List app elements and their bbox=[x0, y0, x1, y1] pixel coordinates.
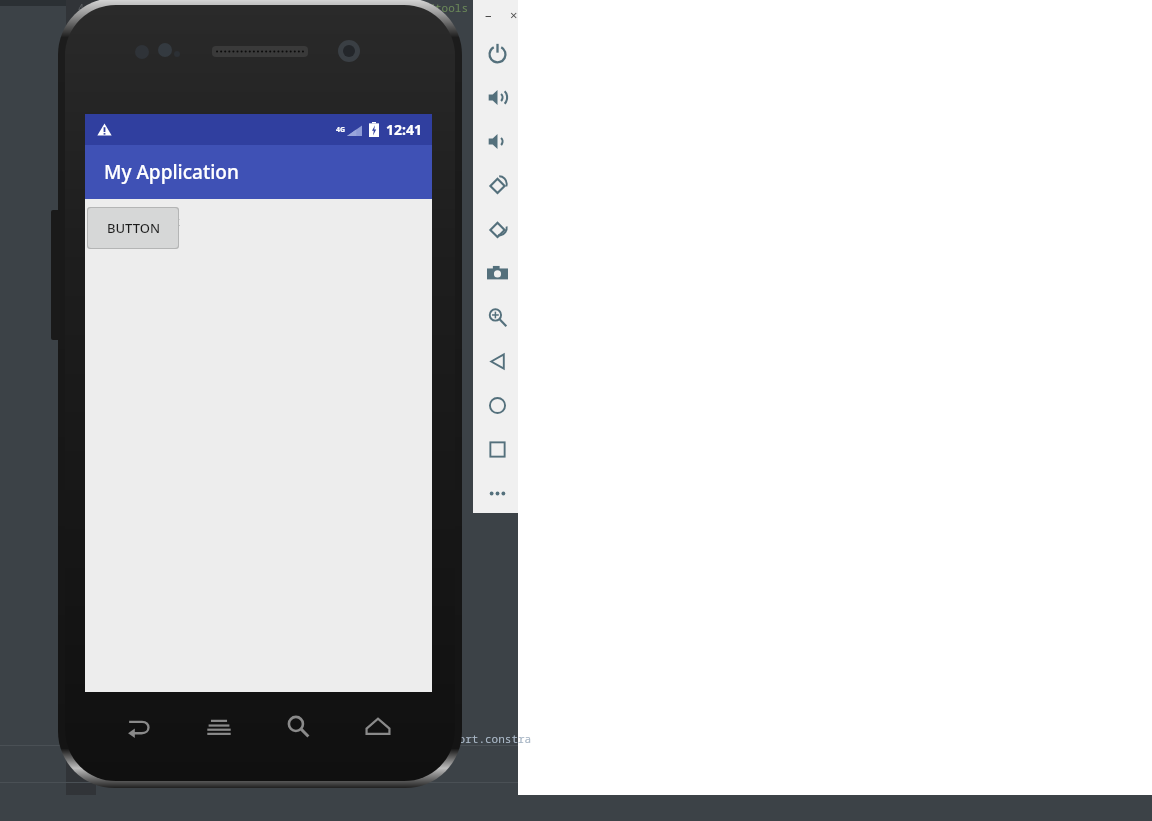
staticText: 4G bbox=[336, 125, 346, 135]
button[interactable]: BUTTON bbox=[88, 208, 178, 248]
button[interactable]: Zoom bbox=[478, 298, 516, 336]
staticText: port.constra bbox=[452, 731, 532, 746]
button[interactable]: Rotate right bbox=[478, 210, 516, 248]
button[interactable]: Home bbox=[352, 700, 404, 752]
button[interactable]: Power bbox=[478, 34, 516, 72]
staticText: My Application bbox=[104, 159, 239, 185]
button[interactable]: More bbox=[478, 474, 516, 512]
staticText: 12:41 bbox=[386, 120, 422, 139]
button[interactable]: Back bbox=[113, 700, 165, 752]
button[interactable]: Screenshot bbox=[478, 254, 516, 292]
button[interactable]: Home bbox=[478, 386, 516, 424]
staticText: droid.com/tools bbox=[369, 0, 468, 15]
button[interactable]: Back bbox=[478, 342, 516, 380]
button[interactable]: Volume up bbox=[478, 78, 516, 116]
staticText: 5 bbox=[78, 17, 84, 31]
button[interactable]: × bbox=[510, 6, 518, 24]
button[interactable]: – bbox=[485, 6, 492, 24]
staticText: BUTTON bbox=[107, 219, 160, 237]
staticText: Hello Box bbox=[122, 212, 180, 230]
button[interactable]: Menu bbox=[193, 700, 245, 752]
button[interactable]: Rotate left bbox=[478, 166, 516, 204]
button[interactable]: Search bbox=[272, 700, 324, 752]
staticText: 4 bbox=[78, 1, 84, 15]
button[interactable]: Volume down bbox=[478, 122, 516, 160]
button[interactable]: Overview bbox=[478, 430, 516, 468]
